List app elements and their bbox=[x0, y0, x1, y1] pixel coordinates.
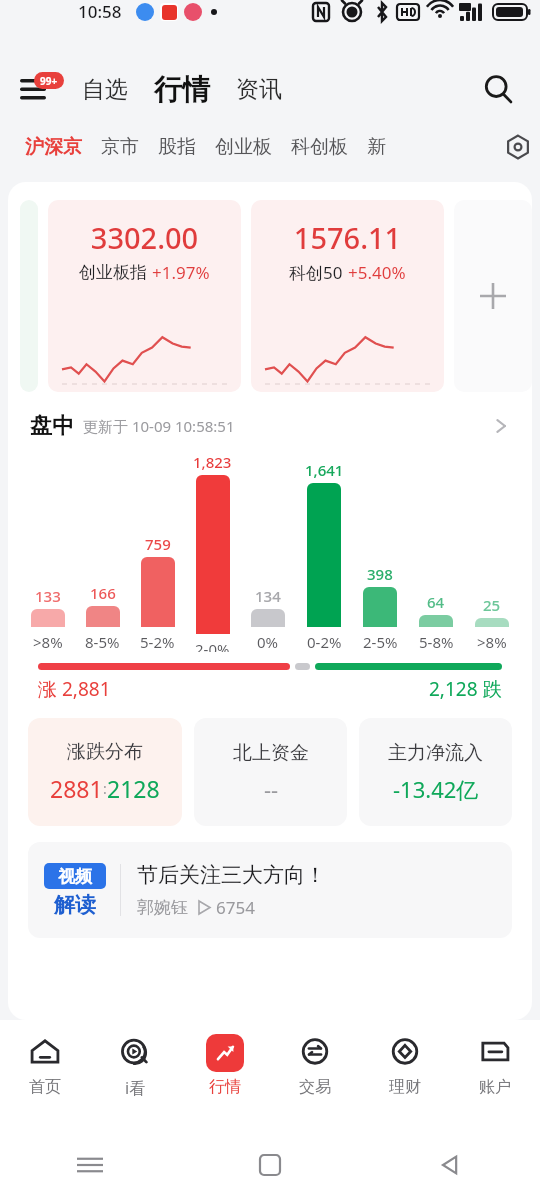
button[interactable]: 行情 bbox=[180, 1020, 270, 1130]
button[interactable]: 行情 bbox=[150, 68, 214, 111]
staticText: 1,823 bbox=[193, 452, 232, 472]
staticText: >8% bbox=[477, 632, 507, 652]
staticText: 涨跌分布 bbox=[67, 740, 143, 764]
staticText: 涨 2,881 bbox=[38, 676, 111, 702]
button[interactable]: 自选 bbox=[78, 69, 132, 110]
staticText: : bbox=[103, 779, 107, 798]
staticText: 沪深京 bbox=[25, 135, 82, 159]
staticText: 理财 bbox=[389, 1077, 421, 1097]
button[interactable]: 沪深京 bbox=[20, 129, 87, 165]
staticText: 账户 bbox=[479, 1077, 511, 1097]
staticText: 节后关注三大方向！ bbox=[137, 862, 326, 888]
staticText: 5-2% bbox=[140, 632, 175, 652]
staticText: 视频 bbox=[58, 866, 92, 887]
staticText: 盘中 bbox=[30, 412, 74, 440]
staticText: 8-5% bbox=[85, 632, 120, 652]
staticText: 759 bbox=[145, 534, 171, 554]
staticText: 25 bbox=[483, 595, 501, 615]
staticText: 科创板 bbox=[291, 135, 348, 159]
staticText: 10:58 bbox=[78, 0, 122, 23]
button[interactable]: 交易 bbox=[270, 1020, 360, 1130]
staticText: 1576.11 bbox=[251, 218, 444, 257]
button[interactable]: i看 bbox=[90, 1020, 180, 1130]
button[interactable]: 资讯 bbox=[232, 69, 286, 110]
button[interactable]: 账户 bbox=[450, 1020, 540, 1130]
staticText: 新 bbox=[367, 135, 386, 159]
staticText: 2881 bbox=[50, 773, 103, 804]
staticText: 行情 bbox=[209, 1077, 241, 1097]
staticText: +1.97% bbox=[152, 261, 210, 284]
button[interactable]: 涨跌分布 bbox=[28, 718, 182, 826]
button[interactable]: 3302.00 bbox=[48, 200, 241, 392]
staticText: 京市 bbox=[101, 135, 139, 159]
staticText: 主力净流入 bbox=[388, 741, 483, 765]
button[interactable]: 北上资金 bbox=[194, 718, 347, 826]
button[interactable]: 新 bbox=[362, 129, 391, 165]
staticText: >8% bbox=[33, 632, 63, 652]
staticText: 资讯 bbox=[236, 75, 282, 104]
staticText: 交易 bbox=[299, 1077, 331, 1097]
staticText: 2128 bbox=[107, 773, 160, 804]
staticText: 3302.00 bbox=[48, 218, 241, 257]
button[interactable]: Home bbox=[248, 1143, 292, 1187]
staticText: 2,128 跌 bbox=[429, 676, 502, 702]
staticText: 更新于 10-09 10:58:51 bbox=[83, 416, 235, 436]
staticText: +5.40% bbox=[348, 261, 406, 284]
button[interactable]: Menu bbox=[20, 67, 72, 111]
staticText: 自选 bbox=[82, 75, 128, 104]
button[interactable]: 主力净流入 bbox=[359, 718, 512, 826]
button[interactable]: 1576.11 bbox=[251, 200, 444, 392]
staticText: 0% bbox=[257, 632, 279, 652]
button[interactable]: Recents bbox=[68, 1143, 112, 1187]
staticText: 2-5% bbox=[363, 632, 398, 652]
button[interactable]: 科创板 bbox=[286, 129, 353, 165]
staticText: 64 bbox=[427, 592, 445, 612]
staticText: 创业板 bbox=[215, 135, 272, 159]
staticText: 科创50 bbox=[289, 261, 343, 284]
staticText: 北上资金 bbox=[233, 741, 309, 765]
button[interactable]: 首页 bbox=[0, 1020, 90, 1130]
staticText: 166 bbox=[90, 583, 116, 603]
staticText: 99+ bbox=[40, 74, 58, 88]
staticText: 创业板指 bbox=[79, 262, 147, 283]
staticText: 首页 bbox=[29, 1077, 61, 1097]
button[interactable]: More categories bbox=[496, 122, 540, 172]
button[interactable]: 创业板 bbox=[210, 129, 277, 165]
staticText: 1,641 bbox=[305, 460, 344, 480]
staticText: -13.42亿 bbox=[393, 774, 479, 804]
button[interactable]: 视频 bbox=[28, 842, 512, 938]
staticText: 解读 bbox=[54, 892, 96, 918]
staticText: 398 bbox=[367, 564, 393, 584]
staticText: 133 bbox=[35, 586, 61, 606]
button[interactable]: Add index bbox=[454, 200, 532, 392]
button[interactable]: Back bbox=[428, 1143, 472, 1187]
button[interactable]: 京市 bbox=[96, 129, 144, 165]
staticText: 6754 bbox=[216, 896, 255, 919]
staticText: 郭婉钰 bbox=[137, 897, 188, 918]
staticText: 2-0% bbox=[195, 639, 230, 652]
staticText: 134 bbox=[255, 586, 281, 606]
button[interactable]: Search bbox=[476, 67, 520, 111]
staticText: 0-2% bbox=[307, 632, 342, 652]
staticText: 股指 bbox=[158, 135, 196, 159]
staticText: 5-8% bbox=[419, 632, 454, 652]
button[interactable]: 理财 bbox=[360, 1020, 450, 1130]
staticText: 行情 bbox=[154, 72, 210, 107]
staticText: -- bbox=[264, 774, 279, 804]
button[interactable]: 股指 bbox=[153, 129, 201, 165]
staticText: i看 bbox=[125, 1077, 146, 1099]
button[interactable]: 盘中 bbox=[8, 406, 532, 446]
